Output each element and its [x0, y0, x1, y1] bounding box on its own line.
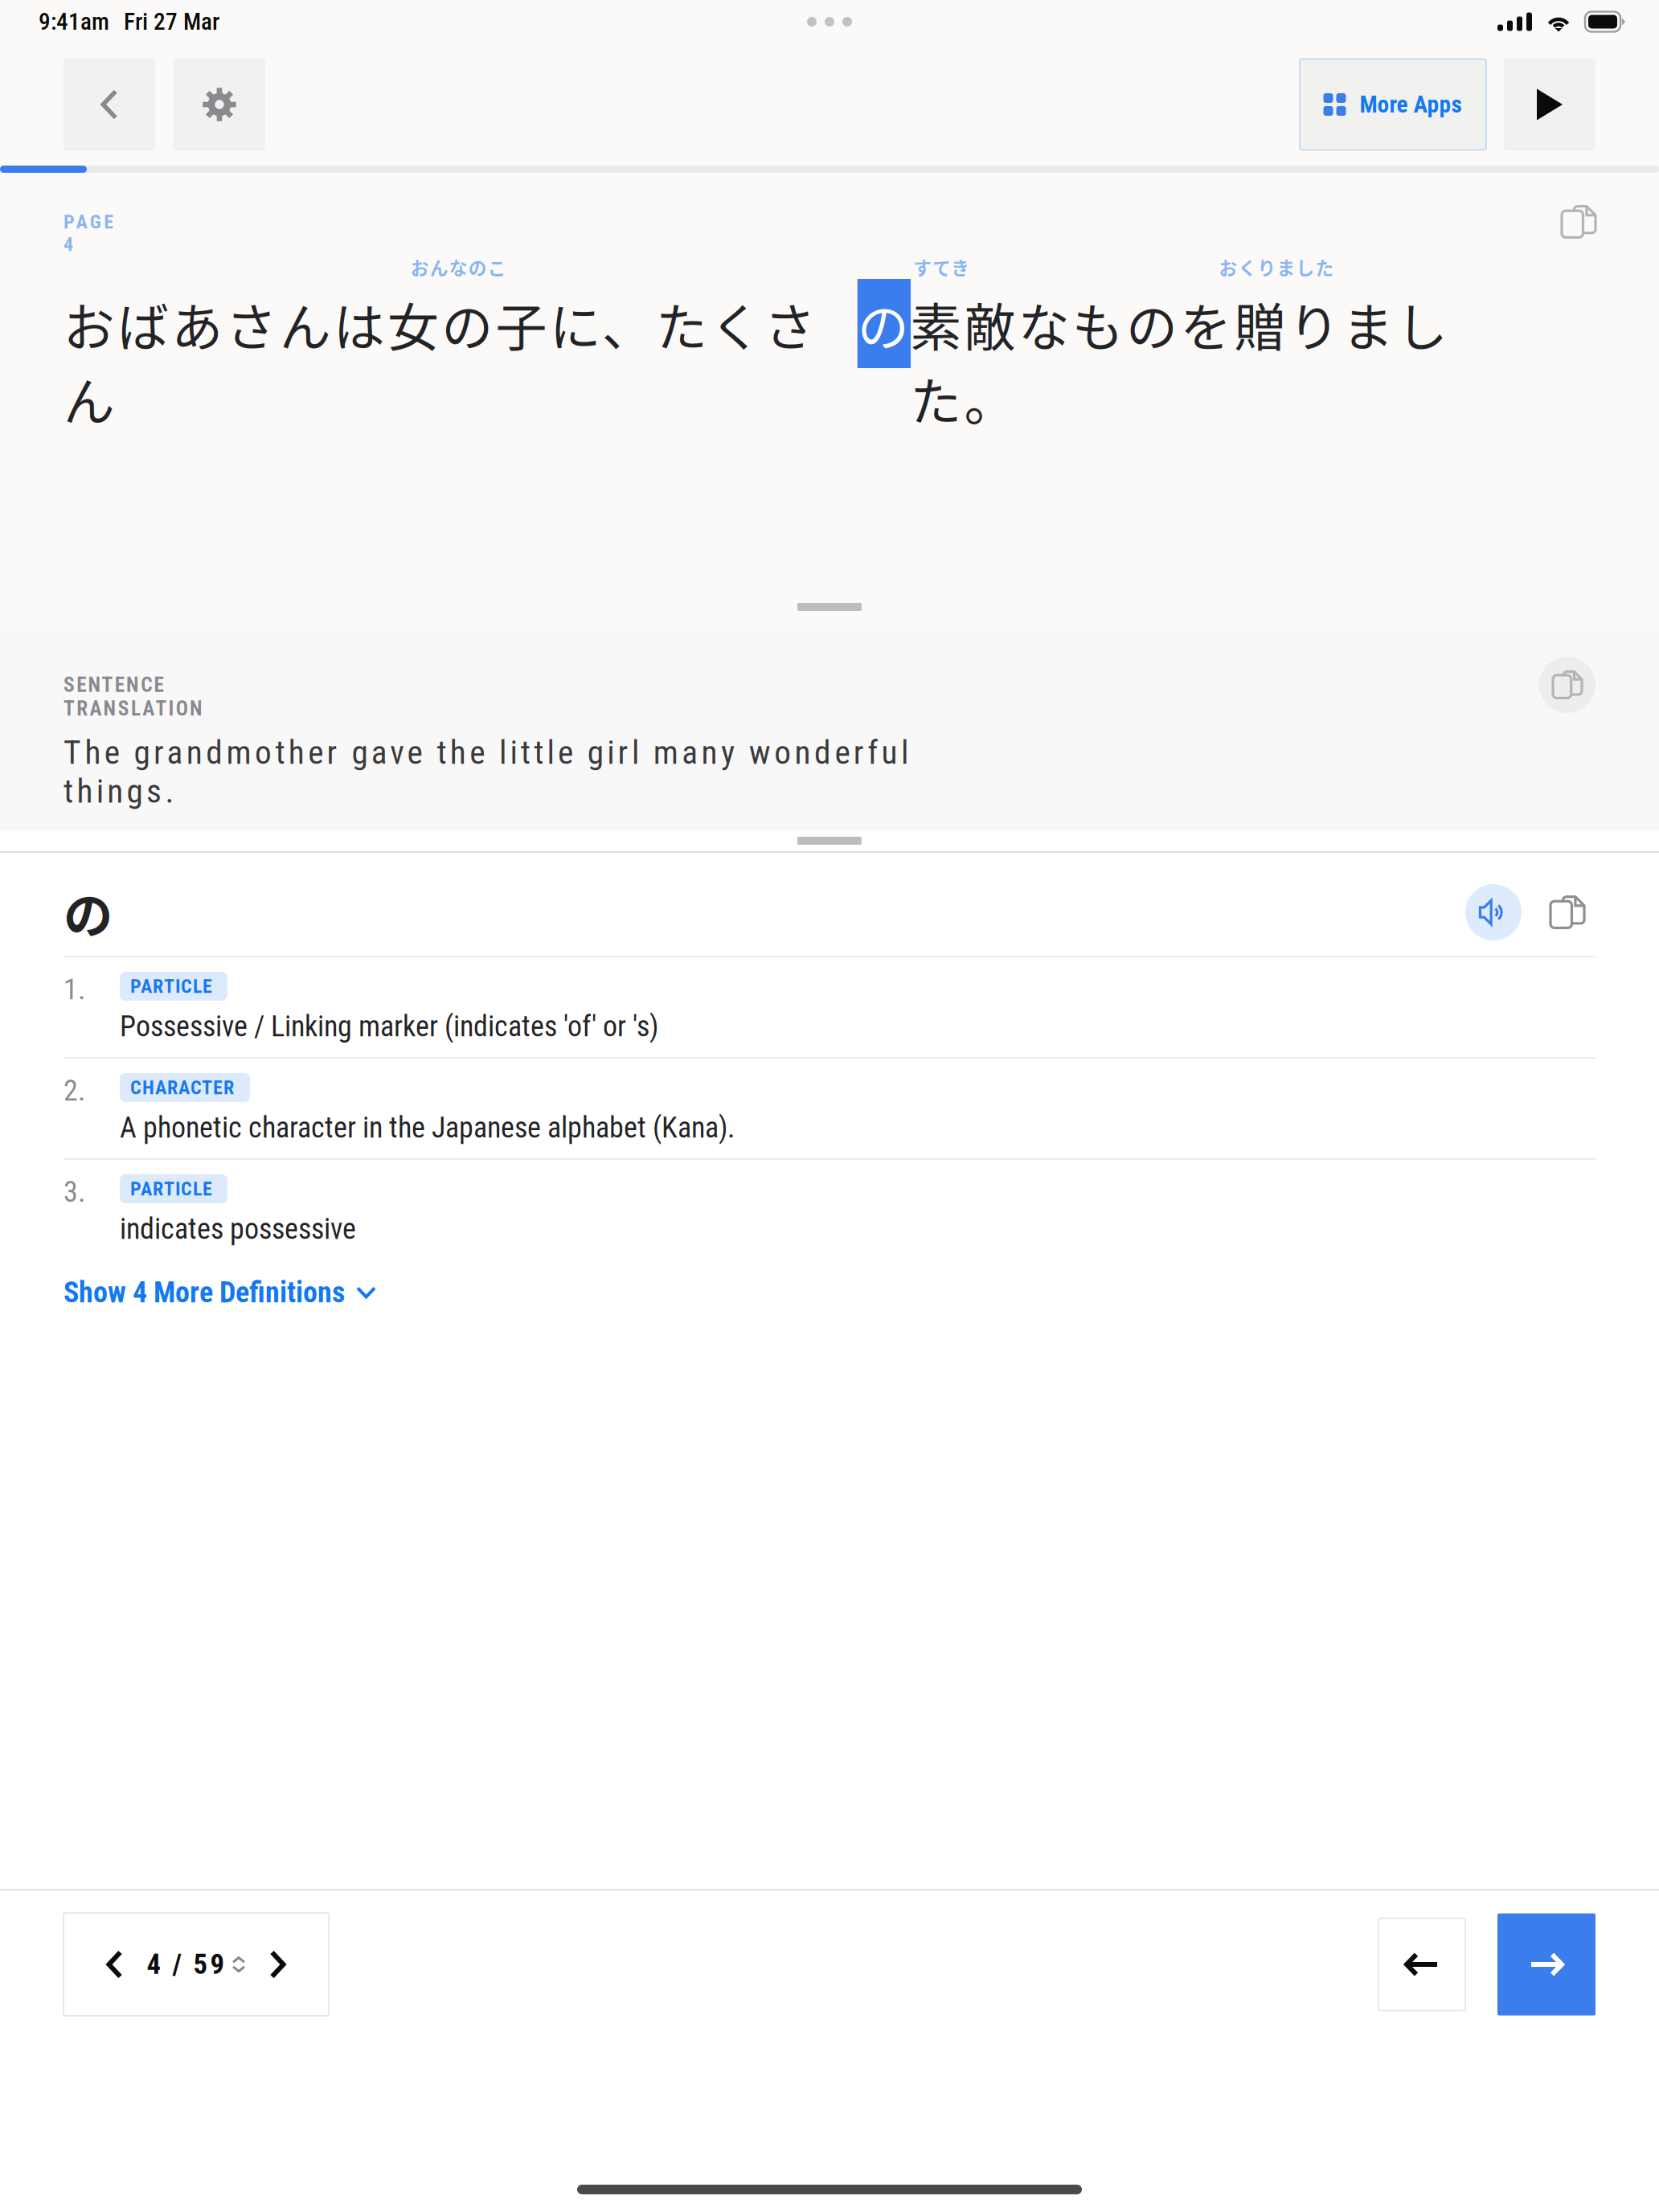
button[interactable]: Copy word — [1539, 884, 1596, 940]
staticText: indicates possessive — [120, 1212, 356, 1246]
button[interactable]: Next page — [252, 1939, 303, 1990]
button[interactable]: Previous page — [89, 1939, 140, 1990]
button[interactable]: Copy sentence — [1562, 205, 1596, 239]
staticText: Show 4 More Definitions — [63, 1276, 345, 1309]
button[interactable]: Back — [63, 58, 155, 151]
staticText: おばあさんは女の子に、たくさん — [63, 286, 869, 361]
staticText: SENTENCE TRANSLATION — [63, 673, 310, 697]
button[interactable]: Show 4 More Definitions — [63, 1260, 1596, 1325]
staticText: の — [857, 286, 909, 361]
button[interactable]: Pronounce — [1465, 884, 1522, 940]
button[interactable]: Next — [1497, 1913, 1596, 2015]
button[interactable]: Settings — [174, 58, 265, 151]
staticText: 4 / 59 — [147, 1948, 225, 1981]
staticText: A phonetic character in the Japanese alp… — [120, 1111, 735, 1145]
staticText: おくりました — [1219, 254, 1334, 280]
staticText: おんなのこ — [411, 254, 506, 280]
button[interactable]: Copy translation — [1539, 657, 1596, 713]
staticText: Fri 27 Mar — [124, 8, 219, 36]
button[interactable]: More Apps — [1300, 59, 1486, 150]
button[interactable]: Play — [1504, 58, 1596, 151]
staticText: 9:41am — [39, 8, 109, 36]
staticText: The grandmother gave the little girl man… — [63, 733, 1033, 772]
button[interactable]: Previous — [1378, 1918, 1465, 2011]
staticText: PARTICLE — [130, 975, 212, 997]
staticText: の — [63, 877, 113, 948]
staticText: 3. — [63, 1175, 85, 1209]
staticText: CHARACTER — [130, 1076, 234, 1099]
staticText: 1. — [63, 972, 85, 1006]
staticText: 素敵なものを贈りました。 — [910, 286, 1556, 361]
staticText: 2. — [63, 1074, 85, 1108]
staticText: More Apps — [1360, 91, 1462, 118]
staticText: すてき — [913, 254, 970, 280]
staticText: Possessive / Linking marker (indicates '… — [120, 1009, 658, 1043]
staticText: PARTICLE — [130, 1177, 212, 1200]
staticText: PAGE 4 — [63, 211, 133, 233]
